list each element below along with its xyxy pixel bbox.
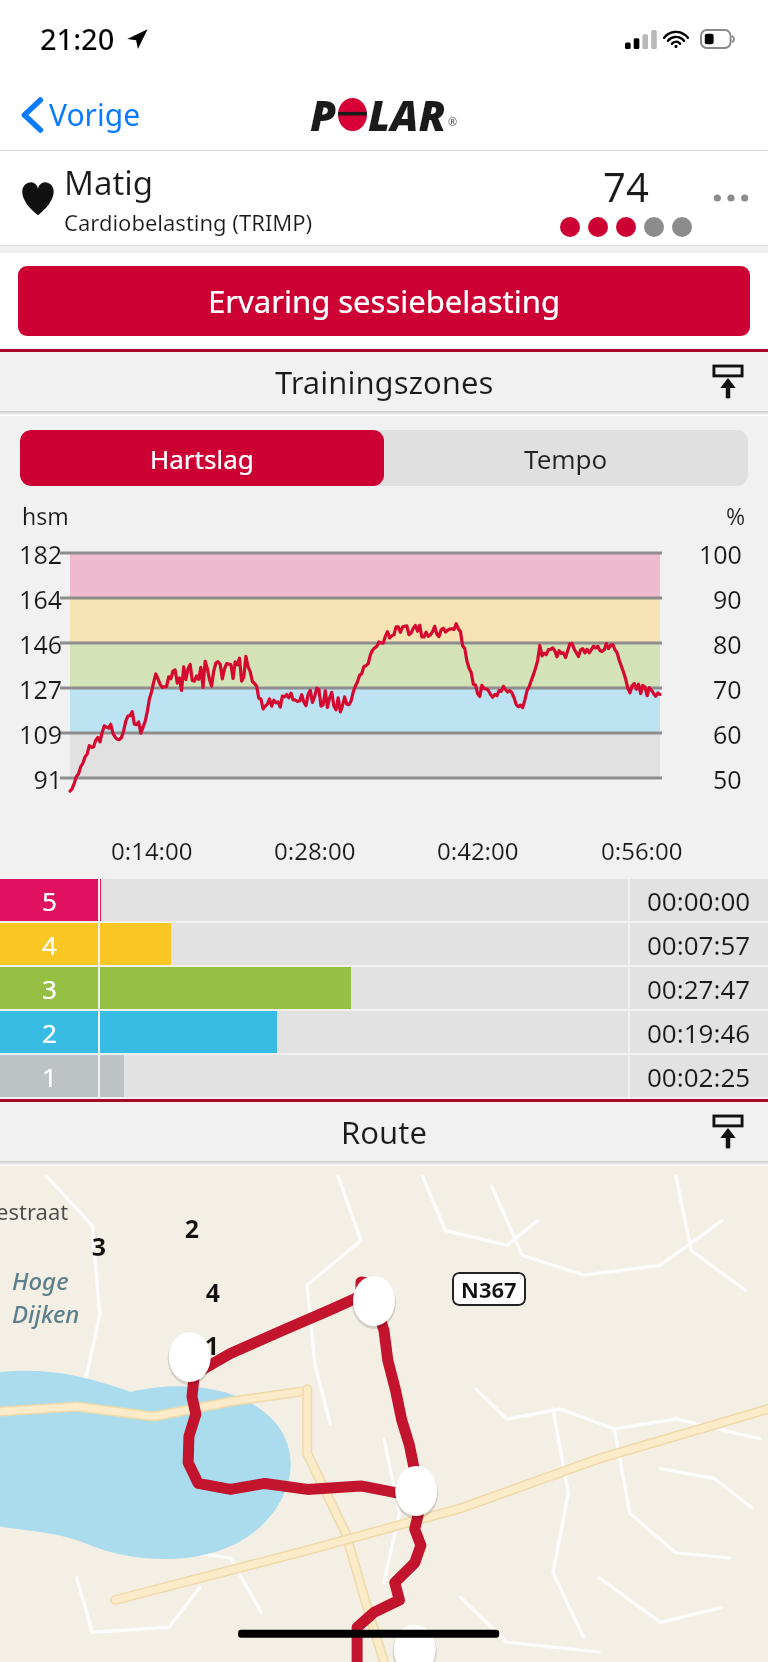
- staticText: 0:28:00: [274, 834, 356, 867]
- staticText: %: [726, 500, 746, 531]
- staticText: 100: [699, 537, 742, 571]
- staticText: 80: [713, 627, 742, 661]
- staticText: Hartslag: [150, 441, 254, 476]
- staticText: 50: [713, 762, 742, 796]
- staticText: Vorige: [49, 94, 141, 135]
- staticText: 00:07:57: [647, 927, 751, 962]
- button[interactable]: 4: [0, 923, 768, 965]
- staticText: 0:42:00: [437, 834, 519, 867]
- staticText: 2: [42, 1015, 57, 1050]
- button[interactable]: Hartslag: [20, 430, 384, 486]
- staticText: 2: [183, 1211, 201, 1245]
- staticText: 164: [10, 582, 62, 616]
- other: Cardio load: [18, 178, 58, 218]
- staticText: Ervaring sessiebelasting: [208, 280, 560, 322]
- staticText: 0:14:00: [111, 834, 193, 867]
- staticText: 127: [10, 672, 62, 706]
- staticText: 91: [10, 762, 62, 796]
- button[interactable]: 3: [0, 967, 768, 1009]
- button[interactable]: Vorige: [0, 88, 157, 141]
- button[interactable]: Trainingszones: [0, 352, 768, 411]
- button[interactable]: Route: [0, 1102, 768, 1161]
- staticText: ®: [448, 114, 458, 129]
- staticText: Tempo: [524, 441, 608, 476]
- button[interactable]: Tempo: [384, 430, 748, 486]
- staticText: hsm: [22, 500, 69, 531]
- staticText: 00:27:47: [647, 971, 751, 1006]
- staticText: 60: [713, 717, 742, 751]
- button[interactable]: 1: [0, 1055, 768, 1097]
- staticText: Cardiobelasting (TRIMP): [64, 207, 313, 237]
- staticText: 3: [90, 1229, 108, 1263]
- staticText: 5: [42, 883, 57, 918]
- staticText: N367: [461, 1274, 517, 1304]
- button[interactable]: Ervaring sessiebelasting: [18, 266, 750, 336]
- staticText: 00:02:25: [647, 1059, 751, 1094]
- staticText: 4: [42, 927, 57, 962]
- staticText: LAR: [368, 86, 446, 143]
- staticText: 182: [10, 537, 62, 571]
- staticText: 70: [713, 672, 742, 706]
- button[interactable]: 3: [0, 1166, 768, 1662]
- button[interactable]: 2: [0, 1011, 768, 1053]
- staticText: 90: [713, 582, 742, 616]
- staticText: 74: [603, 159, 649, 213]
- other: Export: [712, 365, 744, 399]
- staticText: 00:19:46: [647, 1015, 751, 1050]
- other: Export: [712, 1115, 744, 1149]
- staticText: 109: [10, 717, 62, 751]
- staticText: P: [310, 86, 337, 143]
- staticText: Route: [341, 1111, 427, 1153]
- staticText: 1: [42, 1059, 57, 1094]
- staticText: 21:20: [40, 19, 115, 58]
- button[interactable]: Cardio load: [0, 151, 768, 245]
- staticText: 1: [203, 1328, 221, 1362]
- other: More options: [712, 192, 750, 204]
- staticText: Hoge Dijken: [12, 1264, 80, 1330]
- staticText: 0:56:00: [601, 834, 683, 867]
- staticText: estraat: [0, 1196, 69, 1226]
- staticText: 4: [204, 1275, 222, 1309]
- staticText: 146: [10, 627, 62, 661]
- staticText: Trainingszones: [275, 361, 494, 403]
- staticText: 00:00:00: [647, 883, 751, 918]
- staticText: Matig: [64, 160, 154, 205]
- staticText: 3: [42, 971, 57, 1006]
- button[interactable]: 5: [0, 879, 768, 921]
